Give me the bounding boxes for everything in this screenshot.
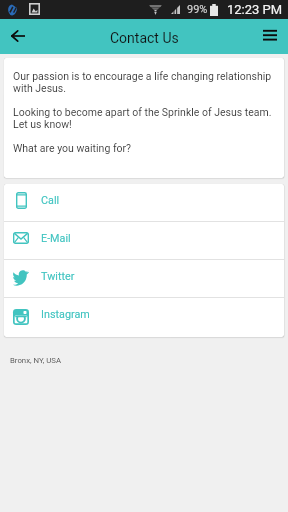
button[interactable]: Call bbox=[4, 184, 284, 221]
button[interactable]: Twitter bbox=[4, 260, 284, 297]
button[interactable]: Menu bbox=[251, 19, 288, 54]
button[interactable]: E-Mail bbox=[4, 222, 284, 259]
staticText: Call bbox=[41, 194, 60, 207]
staticText: 12:23 PM bbox=[227, 2, 283, 17]
staticText: 99% bbox=[187, 3, 208, 16]
staticText: Bronx, NY, USA bbox=[10, 356, 62, 365]
staticText: Contact Us bbox=[110, 30, 179, 46]
staticText: E-Mail bbox=[41, 232, 71, 245]
button[interactable]: Back bbox=[0, 19, 36, 54]
staticText: Twitter bbox=[41, 270, 75, 283]
staticText: Our passion is to encourage a life chang… bbox=[13, 70, 275, 154]
button[interactable]: Instagram bbox=[4, 298, 284, 335]
staticText: Instagram bbox=[41, 308, 90, 321]
